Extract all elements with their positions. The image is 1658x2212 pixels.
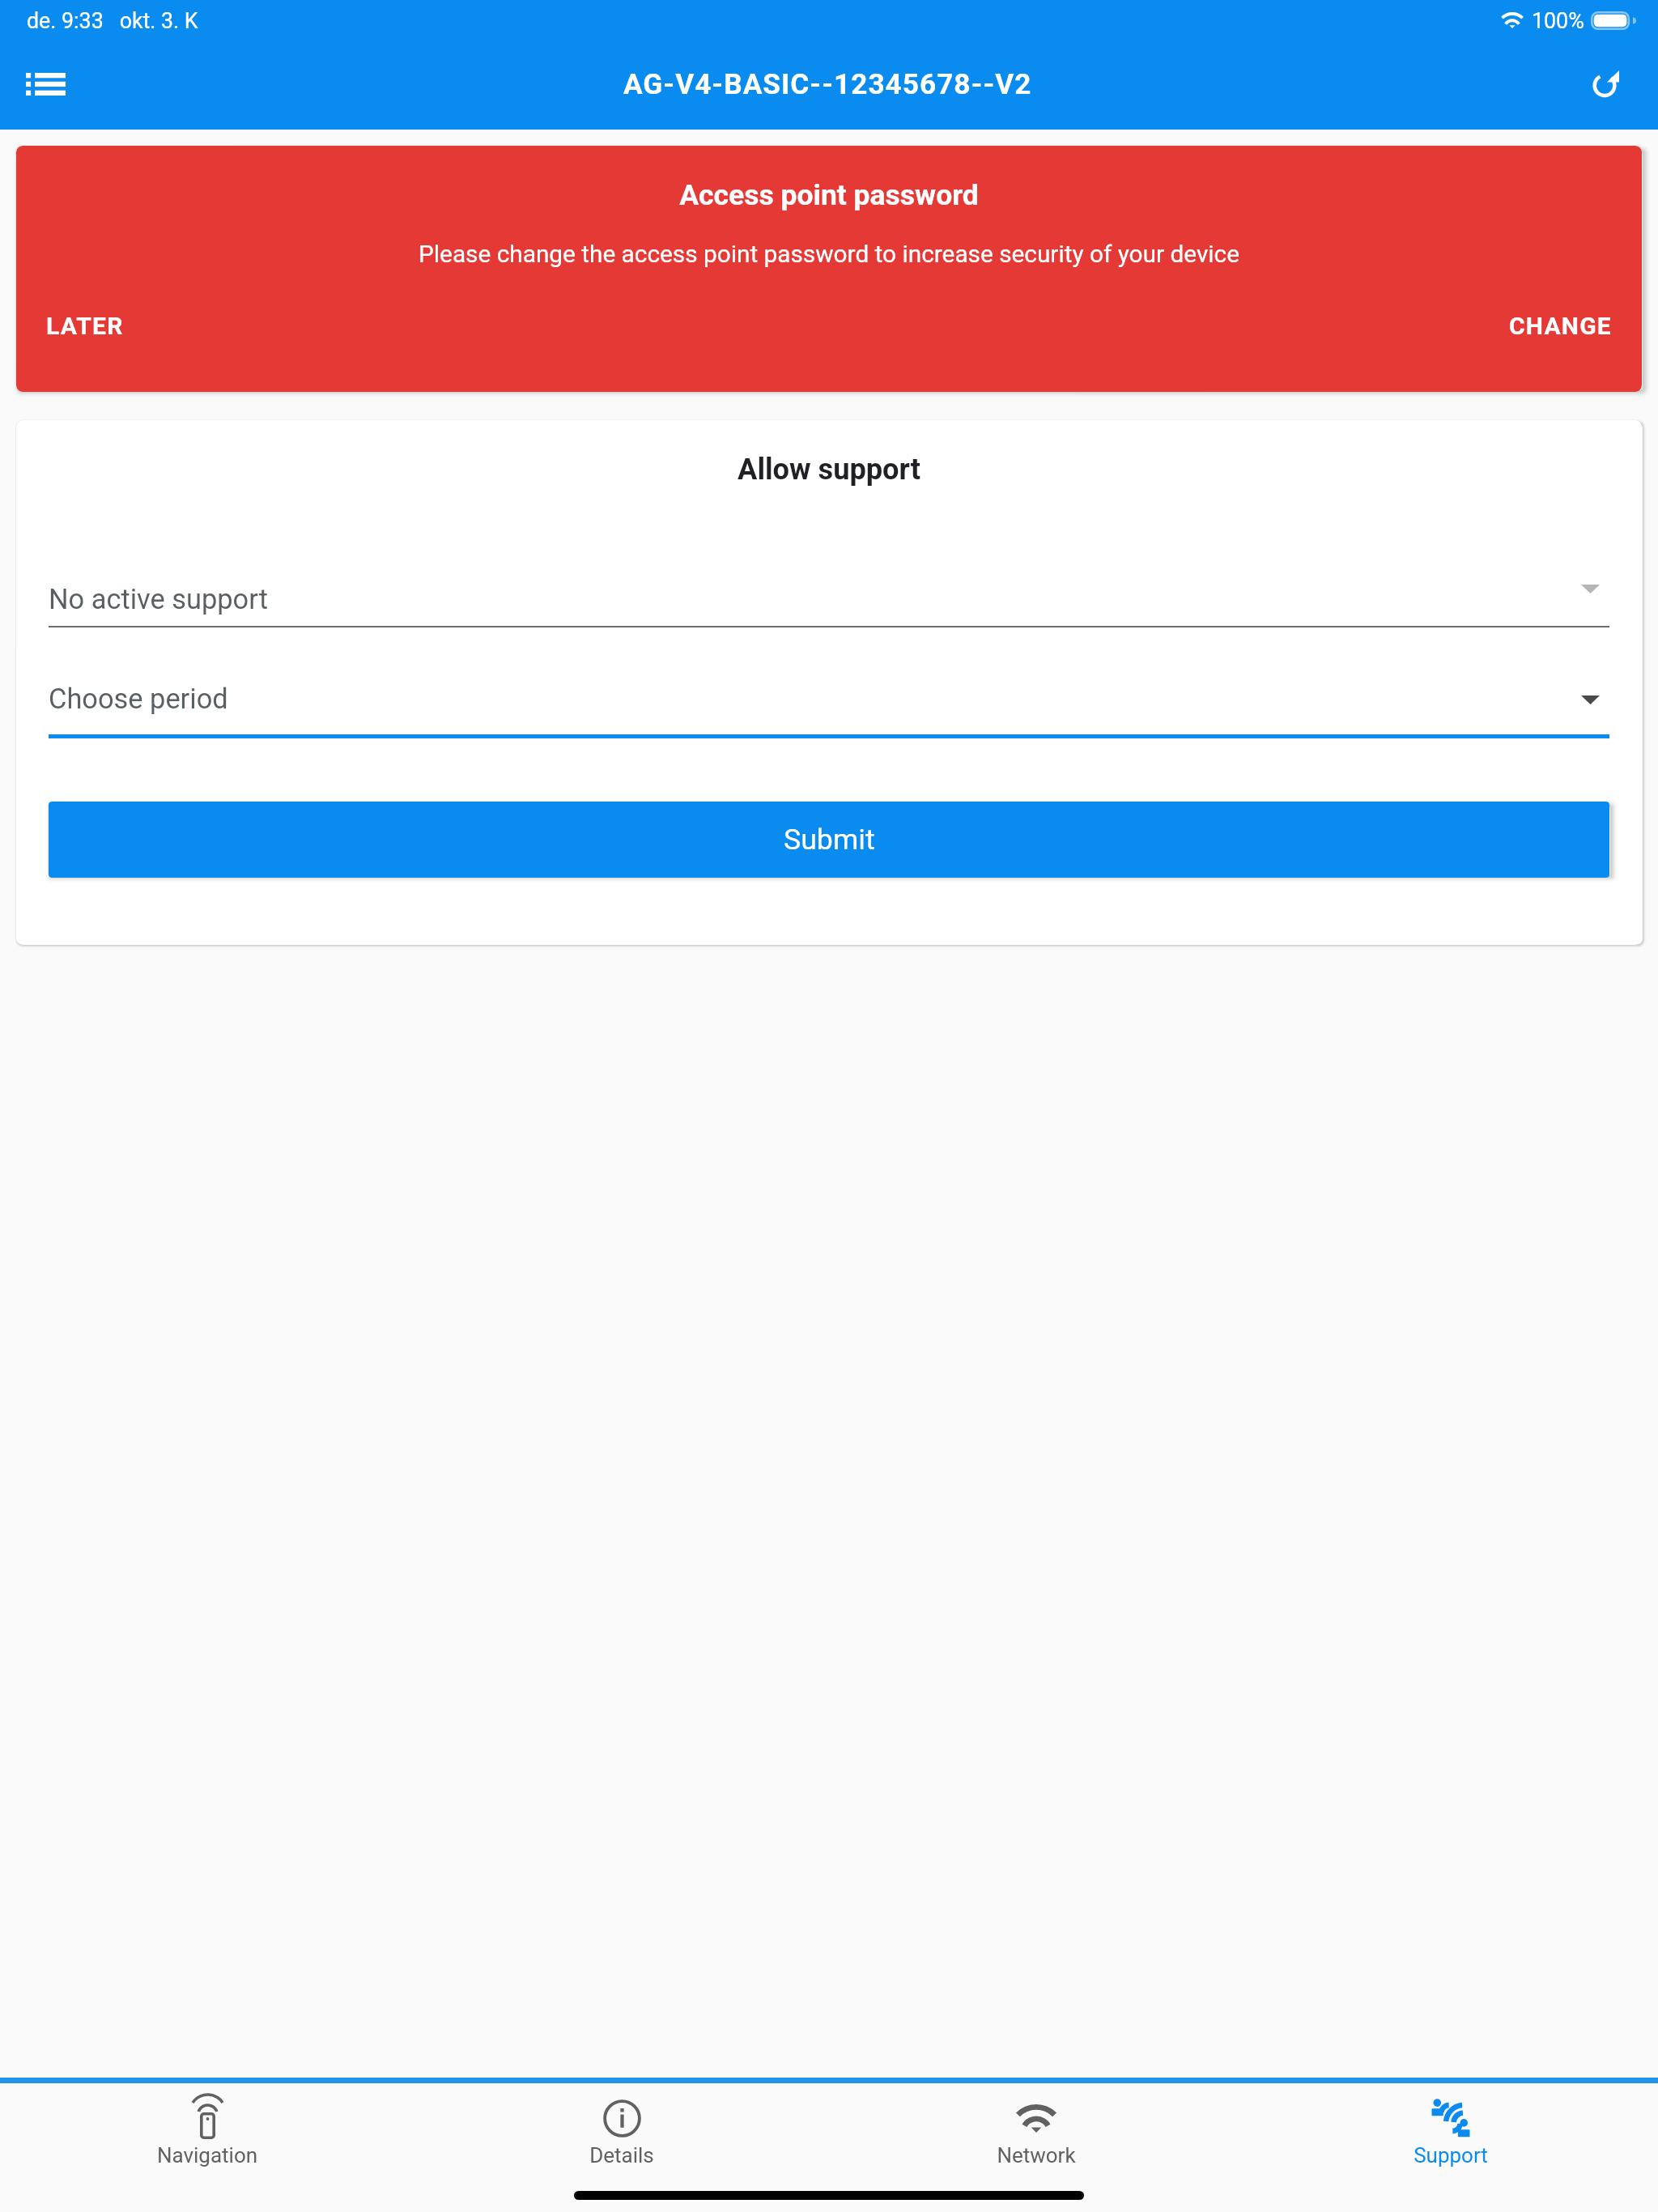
button[interactable]: LATER <box>16 300 154 351</box>
staticText: CHANGE <box>1509 312 1612 340</box>
staticText: de. 9:33 okt. 3. K <box>27 8 198 33</box>
button[interactable]: Support <box>1243 2083 1658 2190</box>
button[interactable]: Details <box>414 2083 829 2190</box>
staticText: 100% <box>1532 8 1584 33</box>
staticText: Navigation <box>0 2143 414 2167</box>
staticText: No active support <box>49 583 268 615</box>
button[interactable]: No active support <box>49 583 1609 615</box>
button[interactable]: Choose period <box>49 683 1609 715</box>
staticText: LATER <box>46 312 124 340</box>
staticText: Please change the access point password … <box>16 240 1642 268</box>
staticText: Support <box>1243 2143 1658 2167</box>
staticText: AG-V4-BASIC--12345678--V2 <box>623 67 1032 100</box>
staticText: Details <box>414 2143 829 2167</box>
staticText: Allow support <box>16 452 1642 486</box>
staticText: Submit <box>784 823 875 857</box>
button[interactable]: Navigation <box>0 2083 414 2190</box>
button[interactable]: Menu <box>0 40 92 125</box>
staticText: Network <box>829 2143 1243 2167</box>
button[interactable]: CHANGE <box>1479 300 1642 351</box>
staticText: Access point password <box>16 178 1642 212</box>
button[interactable]: Network <box>829 2083 1243 2190</box>
button[interactable]: Submit <box>49 802 1609 878</box>
staticText: Choose period <box>49 683 228 715</box>
button[interactable]: Refresh <box>1564 40 1658 125</box>
